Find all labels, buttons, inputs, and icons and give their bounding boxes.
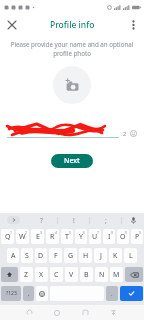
button[interactable]: Expand toolbar [0,213,26,227]
staticText: M [113,270,120,280]
staticText: 8 [111,230,114,235]
staticText: G [68,251,74,261]
button[interactable]: X [35,267,48,282]
staticText: S [25,251,29,261]
staticText: 5 [69,230,72,235]
button[interactable]: Backspace [125,267,143,282]
button[interactable]: O [117,229,129,244]
staticText: 6 [83,230,86,235]
staticText: B [84,270,89,280]
button[interactable]: Enter [120,286,143,301]
button[interactable]: V [65,267,78,282]
staticText: L [129,251,133,261]
button[interactable]: 2 [7,116,137,138]
staticText: V [69,270,74,280]
button[interactable]: T [61,229,73,244]
button[interactable]: W [16,229,29,244]
button[interactable]: Voice input [122,213,144,227]
staticText: 0 [139,230,142,235]
button[interactable]: Y [75,229,87,244]
staticText: 9 [125,230,128,235]
staticText: ?123 [6,290,17,297]
staticText: 2 [123,130,127,137]
button[interactable]: Emoji [129,129,137,137]
button[interactable]: G [64,248,77,263]
staticText: ! [73,216,75,225]
button[interactable]: Keyboard hide [99,305,127,320]
button[interactable]: M [110,267,123,282]
button[interactable]: E [31,229,44,244]
button[interactable]: R [46,229,59,244]
button[interactable]: Back [16,305,43,320]
staticText: F [54,251,58,261]
staticText: R [50,232,55,242]
button[interactable]: , [23,286,34,301]
button[interactable]: Shift [1,267,18,282]
button[interactable]: B [80,267,93,282]
button[interactable]: More options [125,17,141,33]
staticText: Q [5,232,11,242]
staticText: O [120,232,126,242]
button[interactable]: ? [26,213,57,227]
staticText: Next [64,156,80,166]
staticText: ; [105,216,107,225]
button[interactable]: H [79,248,92,263]
button[interactable]: ; [90,213,121,227]
button[interactable]: Add profile photo [53,66,91,104]
staticText: D [38,251,44,261]
staticText: J [100,251,102,261]
staticText: 7 [97,230,100,235]
button[interactable]: I [103,229,115,244]
button[interactable]: U [89,229,101,244]
button[interactable]: D [35,248,47,263]
button[interactable]: Q [1,229,14,244]
button[interactable]: C [50,267,63,282]
staticText: X [39,270,44,280]
staticText: Please provide your name and an optional… [10,40,134,58]
staticText: 2 [25,230,28,235]
staticText: ? [40,216,43,225]
staticText: P [135,232,140,242]
staticText: Profile info [50,19,95,31]
button[interactable]: Recents [71,305,99,320]
staticText: C [54,270,59,280]
staticText: 1 [10,230,13,235]
button[interactable]: ! [58,213,89,227]
button[interactable]: J [94,248,107,263]
staticText: I [108,232,111,242]
button[interactable]: Z [20,267,33,282]
staticText: N [99,270,105,280]
staticText: . [111,290,113,298]
button[interactable]: Close [4,17,20,33]
button[interactable]: Emoji keyboard [36,286,48,301]
button[interactable]: A [7,248,19,263]
staticText: Z [24,270,29,280]
staticText: K [113,251,118,261]
button[interactable]: N [95,267,108,282]
button[interactable]: K [109,248,122,263]
button[interactable]: Home [43,305,71,320]
staticText: A [11,251,16,261]
staticText: T [65,232,69,242]
button[interactable]: L [124,248,137,263]
button[interactable]: . [106,286,118,301]
staticText: H [83,251,89,261]
button[interactable]: F [49,248,62,263]
staticText: U [92,232,98,242]
staticText: E [36,232,40,242]
staticText: , [28,290,30,298]
staticText: 4 [55,230,58,235]
button[interactable]: ?123 [1,286,21,301]
button[interactable]: P [131,229,143,244]
button[interactable]: Next [51,154,93,168]
button[interactable]: S [21,248,33,263]
staticText: 3 [40,230,43,235]
staticText: Y [79,232,83,242]
staticText: W [19,232,26,242]
